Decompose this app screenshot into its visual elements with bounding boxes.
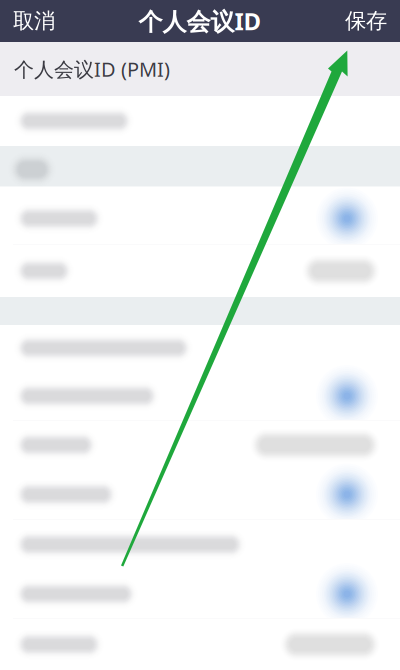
staticText: 个人会议ID [138, 5, 261, 37]
button[interactable] [0, 372, 400, 420]
button[interactable] [0, 619, 400, 670]
staticText: 个人会议ID (PMI) [14, 56, 170, 82]
button[interactable] [0, 421, 400, 469]
button[interactable] [0, 325, 400, 371]
button[interactable]: 保存 [332, 0, 400, 44]
button[interactable]: 取消 [0, 0, 68, 44]
staticText: 取消 [13, 8, 55, 34]
button[interactable] [0, 570, 400, 618]
staticText: 保存 [345, 8, 387, 34]
button[interactable] [0, 520, 400, 569]
button[interactable] [0, 245, 400, 297]
button[interactable] [0, 96, 400, 146]
button[interactable] [0, 193, 400, 244]
button[interactable] [0, 470, 400, 519]
